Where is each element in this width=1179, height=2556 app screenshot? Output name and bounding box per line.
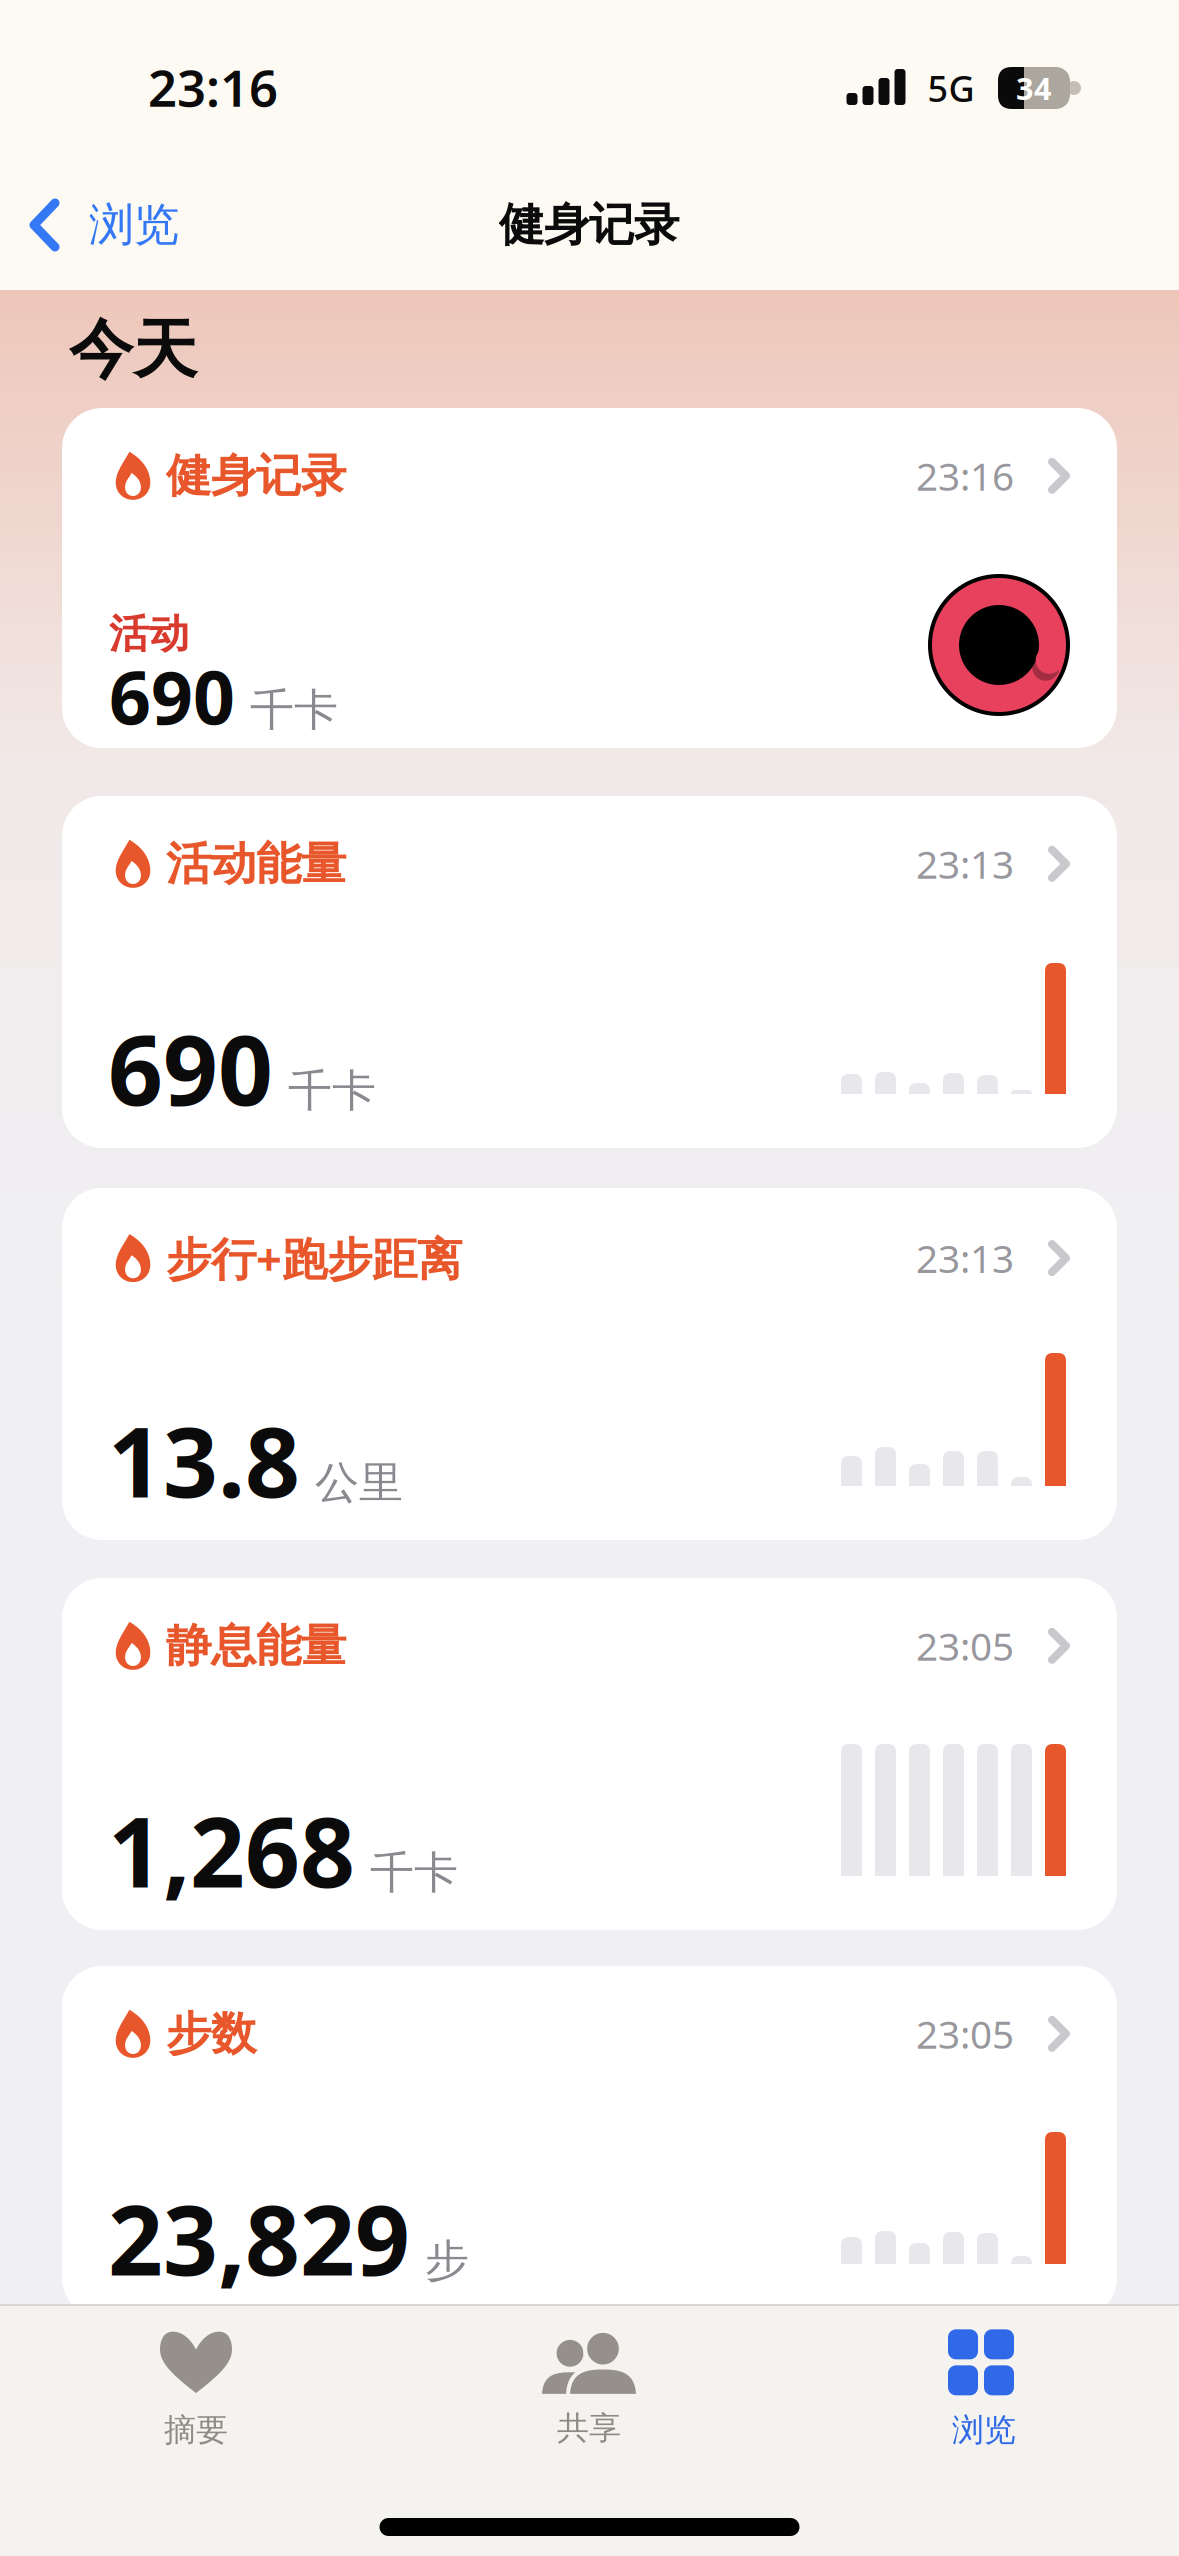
staticText: 千卡 [370, 1846, 458, 1900]
staticText: 今天 [69, 311, 197, 389]
staticText: 23:05 [916, 1620, 1014, 1671]
staticText: 步数 [166, 2006, 256, 2062]
staticText: 23:16 [148, 53, 278, 121]
button[interactable]: 返回浏览 [29, 197, 179, 253]
button[interactable]: 健身记录 [62, 408, 1117, 748]
staticText: 活动能量 [166, 836, 346, 892]
staticText: 5G [927, 64, 974, 112]
staticText: 23:13 [916, 1232, 1014, 1284]
staticText: 34 [1016, 68, 1052, 108]
staticText: 千卡 [288, 1064, 376, 1118]
staticText: 690 [109, 648, 235, 745]
button[interactable]: 步行+跑步距离 [62, 1188, 1117, 1540]
staticText: 公里 [315, 1456, 403, 1510]
staticText: 摘要 [164, 2410, 228, 2450]
staticText: 浏览 [89, 197, 179, 253]
staticText: 23,829 [108, 2174, 410, 2302]
button[interactable]: 共享 [439, 2319, 739, 2469]
staticText: 23:05 [916, 2008, 1014, 2059]
staticText: 23:13 [916, 838, 1014, 889]
button[interactable]: 静息能量 [62, 1578, 1117, 1930]
staticText: 共享 [557, 2408, 621, 2448]
button[interactable]: 活动能量 [62, 796, 1117, 1148]
button[interactable]: 浏览 [834, 2317, 1134, 2467]
staticText: 活动 [109, 609, 189, 659]
button[interactable]: 摘要 [46, 2319, 346, 2469]
button[interactable]: 步数 [62, 1966, 1117, 2318]
staticText: 健身记录 [166, 448, 346, 504]
staticText: 千卡 [250, 683, 338, 737]
staticText: 步 [425, 2234, 469, 2288]
staticText: 浏览 [952, 2410, 1016, 2450]
staticText: 静息能量 [166, 1618, 346, 1674]
staticText: 步行+跑步距离 [166, 1228, 462, 1288]
staticText: 13.8 [108, 1396, 300, 1524]
staticText: 1,268 [108, 1786, 355, 1914]
staticText: 23:16 [916, 450, 1014, 501]
staticText: 690 [108, 1004, 273, 1132]
staticText: 健身记录 [499, 197, 679, 253]
